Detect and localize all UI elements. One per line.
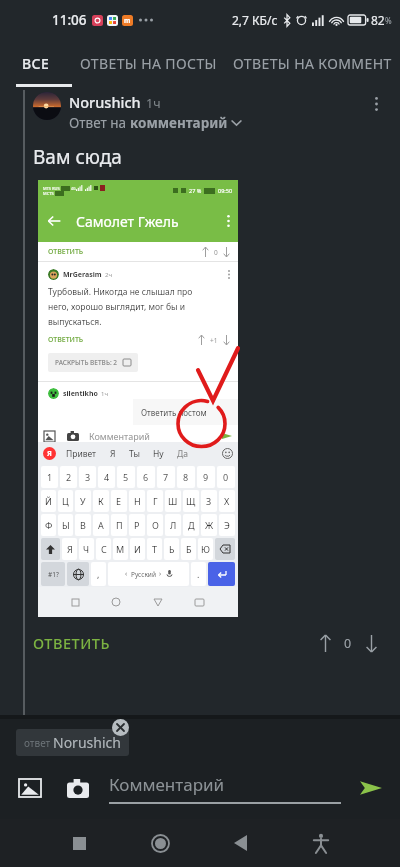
button[interactable]: Norushich xyxy=(0,92,400,132)
staticText: ответ xyxy=(24,736,53,750)
button[interactable]: ОТВЕТЫ НА ПОСТЫ xyxy=(72,40,225,87)
button[interactable]: ОТВЕТИТЬ xyxy=(33,629,110,657)
staticText: 3 xyxy=(85,471,91,483)
staticText: РАСКРЫТЬ ВЕТВЬ: 2 xyxy=(55,358,118,367)
staticText: Ж xyxy=(205,519,214,531)
staticText: Да xyxy=(177,448,188,460)
staticText: О xyxy=(152,519,159,531)
staticText: Ч xyxy=(83,543,90,555)
staticText: 6 xyxy=(143,471,149,483)
staticText: 7 xyxy=(163,471,169,483)
staticText: 0 xyxy=(223,471,229,483)
staticText: Б xyxy=(186,543,192,555)
staticText: Ответ на xyxy=(69,114,130,132)
staticText: него, хорошо выглядит, мог бы и xyxy=(48,301,186,313)
staticText: Русский xyxy=(131,570,156,579)
staticText: Я xyxy=(47,449,52,459)
staticText: И xyxy=(134,543,141,555)
staticText: 4 xyxy=(104,471,110,483)
button[interactable]: Cancel reply xyxy=(112,719,129,736)
staticText: Я xyxy=(110,448,116,460)
button[interactable]: Комментарий xyxy=(109,773,341,804)
staticText: Ю xyxy=(201,543,210,555)
staticText: В xyxy=(80,519,86,531)
staticText: ОТВЕТИТЬ xyxy=(48,335,84,345)
staticText: 11:06 xyxy=(52,11,87,29)
staticText: +1 xyxy=(210,336,218,345)
staticText: К xyxy=(98,495,104,507)
staticText: Ну xyxy=(153,448,164,460)
staticText: Norushich xyxy=(69,92,141,112)
staticText: 2 xyxy=(66,471,72,483)
staticText: Комментарий xyxy=(89,430,150,442)
button[interactable]: ОТВЕТЫ НА КОММЕНТ xyxy=(225,40,400,87)
staticText: Щ xyxy=(186,495,196,507)
staticText: ВСЕ xyxy=(22,54,50,73)
staticText: У xyxy=(80,495,86,507)
staticText: Ты xyxy=(129,448,140,460)
staticText: 9 xyxy=(203,471,209,483)
staticText: 27 % xyxy=(189,187,202,194)
staticText: Э xyxy=(224,519,230,531)
staticText: 0 xyxy=(344,635,352,652)
staticText: m xyxy=(124,16,131,25)
staticText: 1 xyxy=(47,471,53,483)
button[interactable]: Attach image xyxy=(13,771,47,805)
staticText: 09:50 xyxy=(218,187,233,194)
staticText: Турбовый. Никогда не слышал про xyxy=(48,286,193,298)
staticText: Ф xyxy=(45,519,53,531)
staticText: П xyxy=(116,519,123,531)
staticText: › xyxy=(159,569,162,579)
button[interactable]: Accessibility xyxy=(299,821,343,865)
staticText: ‹ xyxy=(125,569,128,579)
button[interactable]: Take photo xyxy=(61,771,95,805)
staticText: комментарий xyxy=(130,114,228,132)
staticText: 2ч xyxy=(105,271,112,279)
button[interactable]: Recents xyxy=(57,821,101,865)
staticText: Ц xyxy=(62,495,69,507)
staticText: С xyxy=(101,543,107,555)
staticText: ОТВЕТЫ НА ПОСТЫ xyxy=(80,54,217,73)
staticText: М xyxy=(116,543,125,555)
button[interactable]: Send xyxy=(355,772,387,804)
staticText: Привет xyxy=(66,448,97,460)
staticText: А xyxy=(98,519,104,531)
staticText: ОТВЕТИТЬ xyxy=(33,633,110,653)
staticText: Ь xyxy=(169,543,175,555)
staticText: Л xyxy=(170,519,177,531)
staticText: Ы xyxy=(62,519,70,531)
staticText: З xyxy=(206,495,212,507)
staticText: MrGerasim xyxy=(63,270,102,280)
staticText: Самолет Гжель xyxy=(76,212,179,231)
staticText: Н xyxy=(134,495,141,507)
staticText: Х xyxy=(224,495,230,507)
staticText: ОТВЕТЫ НА КОММЕНТ xyxy=(233,54,392,73)
staticText: выпускаться. xyxy=(48,316,102,328)
staticText: Ответить постом xyxy=(141,407,207,418)
staticText: Комментарий xyxy=(109,773,225,796)
staticText: . xyxy=(197,568,200,580)
staticText: #1? xyxy=(48,570,59,579)
staticText: Norushich xyxy=(53,733,121,752)
staticText: , xyxy=(97,568,100,580)
staticText: 8 xyxy=(183,471,189,483)
staticText: 0 xyxy=(214,248,218,257)
button[interactable]: Back xyxy=(218,821,262,865)
staticText: 4G xyxy=(71,186,76,191)
staticText: Г xyxy=(153,495,158,507)
button[interactable]: ВСЕ xyxy=(0,40,72,87)
staticText: 2,7 КБ/с xyxy=(232,12,278,28)
button[interactable]: Upvote xyxy=(312,630,338,656)
button[interactable]: Home xyxy=(138,821,182,865)
staticText: % xyxy=(385,15,392,26)
staticText: Вам сюда xyxy=(33,144,122,170)
staticText: Й xyxy=(45,495,52,507)
staticText: Р xyxy=(134,519,140,531)
staticText: 5 xyxy=(123,471,129,483)
staticText: Я xyxy=(67,543,73,555)
staticText: Е xyxy=(116,495,122,507)
staticText: Т xyxy=(152,543,158,555)
button[interactable]: ответ xyxy=(16,729,129,756)
button[interactable]: Downvote xyxy=(358,630,384,656)
button[interactable]: More options xyxy=(364,92,388,116)
